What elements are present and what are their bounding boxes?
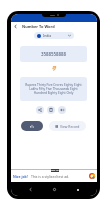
- button[interactable]: Rupees Thirty Five Crores Eighty Eight L…: [20, 77, 87, 101]
- button[interactable]: View Record: [49, 121, 86, 131]
- staticText: This is a stylised test ad.: [31, 174, 70, 179]
- button[interactable]: Convert: [21, 121, 43, 131]
- staticText: Number To Word: [22, 24, 55, 29]
- button[interactable]: Back: [26, 185, 35, 194]
- button[interactable]: Home: [50, 185, 59, 194]
- button[interactable]: India: [34, 32, 74, 39]
- button[interactable]: 3588558888: [20, 46, 87, 62]
- staticText: View Record: [60, 124, 80, 129]
- button[interactable]: Recents: [73, 185, 82, 194]
- staticText: Rupees Thirty Five Crores Eighty Eight L…: [24, 83, 83, 95]
- staticText: Test Ad: [51, 169, 59, 172]
- button[interactable]: Copy: [47, 106, 55, 114]
- button[interactable]: Back: [11, 22, 20, 31]
- staticText: Nice job!: [13, 174, 28, 179]
- button[interactable]: Speak: [58, 106, 66, 114]
- button[interactable]: Share: [36, 106, 44, 114]
- staticText: 3588558888: [41, 51, 67, 57]
- staticText: India: [43, 33, 52, 38]
